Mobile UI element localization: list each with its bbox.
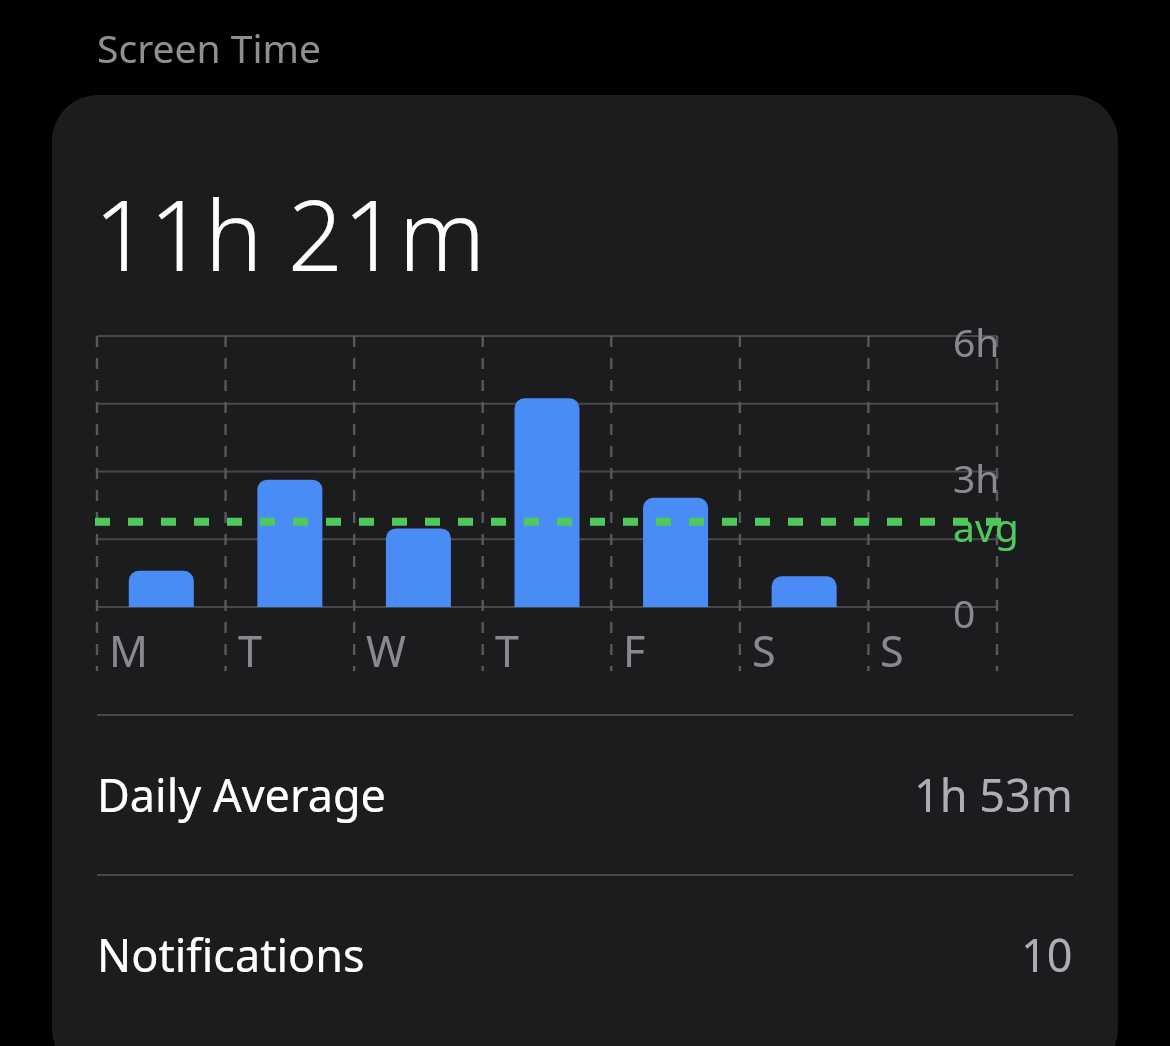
staticText: F xyxy=(623,621,646,680)
staticText: 3h xyxy=(953,451,1000,504)
staticText: Daily Average xyxy=(97,764,386,825)
staticText: 10 xyxy=(1021,924,1073,985)
staticText: M xyxy=(109,621,149,680)
button[interactable]: Notifications xyxy=(97,874,1073,1034)
staticText: Notifications xyxy=(97,924,365,985)
staticText: S xyxy=(880,621,904,680)
staticText: S xyxy=(752,621,776,680)
button[interactable]: Daily Average xyxy=(97,714,1073,874)
staticText: T xyxy=(495,621,519,680)
staticText: T xyxy=(238,621,262,680)
staticText: 6h xyxy=(953,315,1000,368)
staticText: W xyxy=(366,621,406,680)
staticText: Screen Time xyxy=(97,21,321,74)
staticText: 11h 21m xyxy=(94,167,486,299)
staticText: avg xyxy=(953,500,1019,553)
staticText: 1h 53m xyxy=(914,764,1073,825)
staticText: 0 xyxy=(953,586,976,639)
